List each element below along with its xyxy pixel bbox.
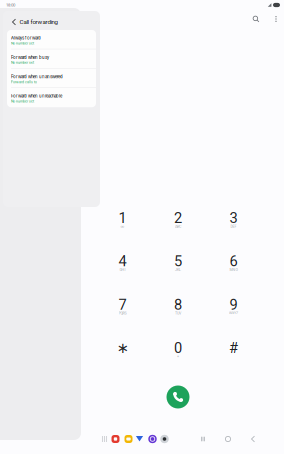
staticText: JKL xyxy=(175,268,181,272)
staticText: 7 xyxy=(118,296,126,313)
staticText: 0 xyxy=(174,339,182,357)
staticText: No number set xyxy=(11,61,34,65)
staticText: GHI xyxy=(119,268,125,272)
button[interactable]: 3 xyxy=(209,202,257,238)
button[interactable]: # xyxy=(209,332,257,368)
staticText: ∞ xyxy=(120,224,124,229)
button[interactable]: ∗ xyxy=(98,332,146,368)
button[interactable]: 9 xyxy=(209,289,257,325)
button[interactable]: Search xyxy=(250,13,262,25)
staticText: 1 xyxy=(118,209,126,227)
staticText: DEF xyxy=(230,224,236,229)
button[interactable]: 4 xyxy=(98,245,146,281)
button[interactable]: Always forward xyxy=(7,30,96,49)
staticText: TUV xyxy=(175,311,181,315)
staticText: + xyxy=(177,354,179,358)
button[interactable]: All apps xyxy=(98,432,110,446)
button[interactable]: Files xyxy=(109,432,121,446)
button[interactable]: Messages xyxy=(133,432,145,446)
button[interactable]: 2 xyxy=(154,202,202,238)
button[interactable]: Forward when busy xyxy=(7,49,96,69)
staticText: ABC xyxy=(175,224,181,229)
button[interactable]: 5 xyxy=(154,245,202,281)
button[interactable]: Recent apps xyxy=(196,432,210,446)
button[interactable]: 6 xyxy=(209,245,257,281)
button[interactable]: Home xyxy=(221,432,235,446)
staticText: Forward when unanswered xyxy=(11,74,63,79)
button[interactable]: Browser xyxy=(146,432,158,446)
staticText: 3 xyxy=(229,209,237,227)
button[interactable]: Call xyxy=(163,382,193,412)
staticText: No number set xyxy=(11,41,34,45)
staticText: 18:00 xyxy=(6,2,15,7)
button[interactable]: Camera xyxy=(158,432,170,446)
button[interactable]: More options xyxy=(270,13,282,25)
staticText: 6 xyxy=(229,253,237,270)
button[interactable]: 7 xyxy=(98,289,146,325)
button[interactable]: Notes xyxy=(122,432,134,446)
staticText: 8 xyxy=(174,296,182,313)
staticText: # xyxy=(229,339,238,357)
staticText: Always forward xyxy=(11,35,41,41)
staticText: Call forwarding xyxy=(19,18,57,26)
staticText: ∗ xyxy=(116,339,128,356)
button[interactable]: Forward when unreachable xyxy=(7,88,96,107)
staticText: WXYZ xyxy=(229,311,238,315)
button[interactable]: Back xyxy=(8,14,19,30)
staticText: Forward when unreachable xyxy=(11,93,62,99)
button[interactable]: 8 xyxy=(154,289,202,325)
staticText: Forward when busy xyxy=(11,55,49,60)
staticText: MNO xyxy=(229,268,237,272)
staticText: Forward calls to xyxy=(11,80,37,84)
staticText: No number set xyxy=(11,99,34,103)
staticText: 9 xyxy=(229,296,237,313)
staticText: 5 xyxy=(174,253,182,270)
button[interactable]: Back xyxy=(246,432,260,446)
button[interactable]: 0 xyxy=(154,332,202,368)
button[interactable]: 1 xyxy=(98,202,146,238)
staticText: PQRS xyxy=(118,311,126,315)
staticText: 4 xyxy=(118,253,126,270)
button[interactable]: Forward when unanswered xyxy=(7,69,96,88)
staticText: 2 xyxy=(174,209,182,227)
